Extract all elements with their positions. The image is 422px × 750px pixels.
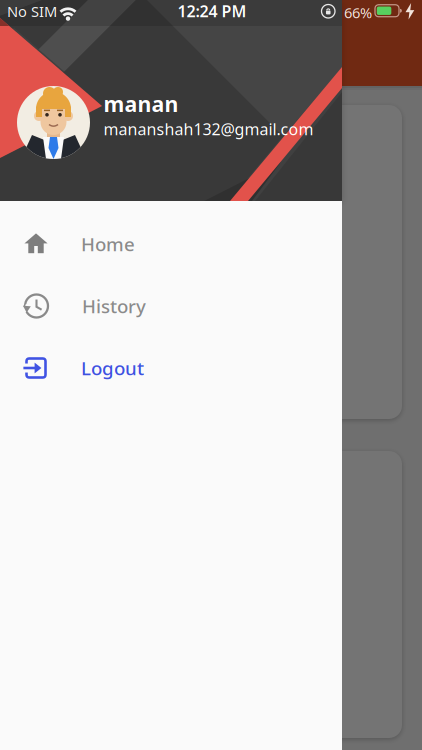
button[interactable]: Logout xyxy=(0,337,342,399)
staticText: Home xyxy=(81,232,135,256)
button[interactable]: Home xyxy=(0,213,342,275)
staticText: Logout xyxy=(81,356,144,380)
staticText: mananshah132@gmail.com xyxy=(103,118,313,140)
button[interactable]: History xyxy=(0,275,342,337)
staticText: 66% xyxy=(344,3,372,22)
staticText: 12:24 PM xyxy=(177,0,246,22)
staticText: History xyxy=(82,294,146,318)
staticText: No SIM xyxy=(7,1,57,21)
staticText: manan xyxy=(103,89,178,118)
button[interactable]: Close navigation drawer xyxy=(342,0,422,750)
